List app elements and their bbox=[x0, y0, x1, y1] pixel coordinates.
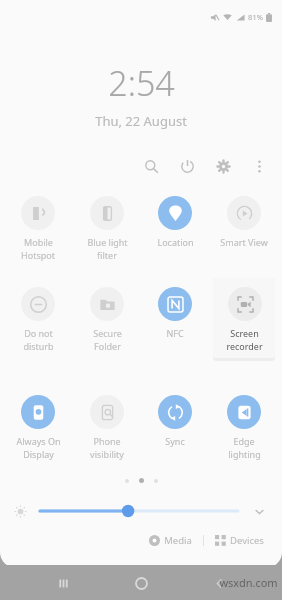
staticText: Screen bbox=[230, 327, 259, 339]
button[interactable]: Brightness bbox=[40, 504, 238, 518]
button[interactable]: More options bbox=[248, 155, 270, 177]
staticText: filter bbox=[97, 249, 117, 261]
staticText: disturb bbox=[23, 340, 54, 352]
button[interactable]: Phone bbox=[76, 395, 138, 460]
button[interactable]: Always On bbox=[7, 395, 69, 460]
button[interactable]: Edge bbox=[213, 395, 275, 460]
staticText: Display bbox=[23, 448, 54, 460]
staticText: Media bbox=[164, 534, 192, 547]
button[interactable]: Blue light bbox=[76, 196, 138, 261]
staticText: Location bbox=[157, 236, 194, 248]
button[interactable]: Screen bbox=[213, 278, 275, 358]
button[interactable]: Settings bbox=[212, 155, 234, 177]
button[interactable]: Home bbox=[126, 568, 156, 598]
button[interactable]: Smart View bbox=[213, 196, 275, 248]
button[interactable]: Back bbox=[204, 568, 234, 598]
button[interactable]: Media bbox=[145, 531, 196, 550]
staticText: Thu, 22 August bbox=[95, 112, 187, 130]
staticText: 81% bbox=[248, 12, 263, 22]
staticText: NFC bbox=[166, 327, 184, 339]
button[interactable]: Sync bbox=[144, 395, 206, 447]
staticText: Always On bbox=[16, 435, 61, 447]
staticText: Devices bbox=[230, 534, 264, 547]
staticText: Smart View bbox=[220, 236, 268, 248]
staticText: Hotspot bbox=[21, 249, 55, 261]
button[interactable]: Do not bbox=[7, 287, 69, 352]
button[interactable]: Search bbox=[140, 155, 162, 177]
staticText: Sync bbox=[165, 435, 185, 447]
staticText: Do not bbox=[24, 327, 53, 339]
staticText: 2:54 bbox=[108, 60, 175, 106]
button[interactable]: Power off bbox=[176, 155, 198, 177]
button[interactable]: Location bbox=[144, 196, 206, 248]
staticText: wsxdn.com bbox=[219, 575, 278, 590]
staticText: lighting bbox=[228, 448, 261, 460]
button[interactable]: Devices bbox=[211, 531, 268, 550]
staticText: Phone bbox=[93, 435, 121, 447]
button[interactable]: Recents bbox=[48, 568, 78, 598]
staticText: Edge bbox=[233, 435, 255, 447]
staticText: recorder bbox=[226, 340, 263, 352]
staticText: Mobile bbox=[24, 236, 53, 248]
staticText: visibility bbox=[90, 448, 124, 460]
staticText: Folder bbox=[94, 340, 121, 352]
button[interactable]: NFC bbox=[144, 287, 206, 339]
button[interactable]: Expand bbox=[253, 505, 266, 518]
button[interactable]: Mobile bbox=[7, 196, 69, 261]
staticText: Blue light bbox=[87, 236, 128, 248]
staticText: Secure bbox=[93, 327, 122, 339]
button[interactable]: Secure bbox=[76, 287, 138, 352]
